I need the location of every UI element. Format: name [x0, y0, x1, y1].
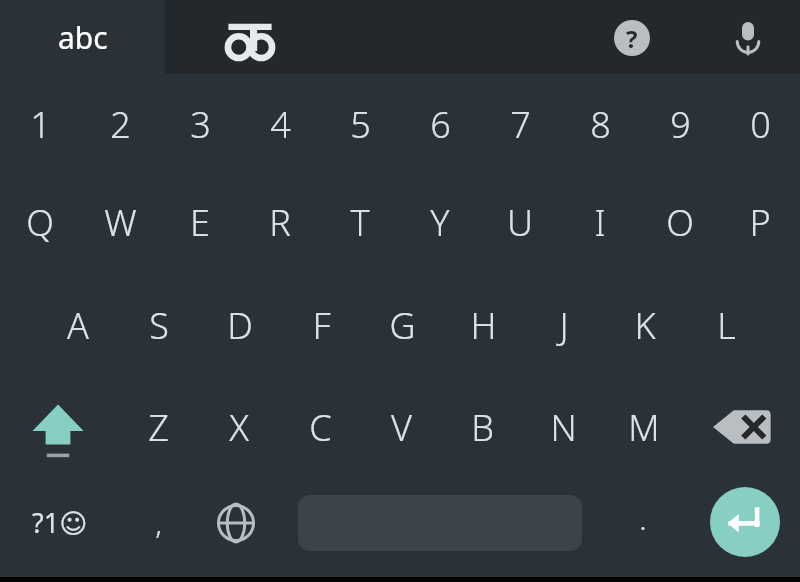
button[interactable]: L	[686, 285, 766, 365]
staticText: U	[507, 198, 533, 247]
button[interactable]: O	[640, 182, 720, 262]
staticText: J	[559, 301, 569, 350]
button[interactable]: .	[608, 486, 678, 551]
button[interactable]: M	[604, 387, 684, 467]
button[interactable]: 8	[560, 84, 640, 164]
staticText: Q	[26, 198, 54, 247]
button[interactable]: Enter	[710, 487, 780, 557]
staticText: O	[666, 198, 694, 247]
button[interactable]: C	[280, 387, 360, 467]
staticText: K	[634, 301, 656, 350]
staticText: P	[749, 198, 771, 247]
button[interactable]: N	[523, 387, 603, 467]
staticText: .	[639, 498, 647, 539]
button[interactable]: H	[443, 285, 523, 365]
staticText: R	[269, 198, 291, 247]
button[interactable]: T	[320, 182, 400, 262]
staticText: ,	[155, 502, 162, 543]
staticText: 9	[670, 100, 691, 149]
button[interactable]: I	[560, 182, 640, 262]
button[interactable]: W	[80, 182, 160, 262]
button[interactable]: G	[362, 285, 442, 365]
staticText: 7	[510, 100, 531, 149]
button[interactable]: S	[119, 285, 199, 365]
button[interactable]: Voice input	[718, 8, 778, 68]
button[interactable]: P	[720, 182, 800, 262]
staticText: ?1☺	[32, 504, 88, 541]
button[interactable]: 7	[480, 84, 560, 164]
button[interactable]: Help	[602, 8, 662, 68]
button[interactable]: 2	[80, 84, 160, 164]
button[interactable]: Y	[400, 182, 480, 262]
button[interactable]: K	[605, 285, 685, 365]
staticText: T	[350, 198, 370, 247]
staticText: abc	[58, 17, 108, 58]
button[interactable]: ?1☺	[10, 490, 110, 555]
button[interactable]: Shift	[18, 387, 98, 467]
staticText: A	[67, 301, 89, 350]
staticText: E	[190, 198, 210, 247]
button[interactable]: Z	[118, 387, 198, 467]
staticText: Y	[430, 198, 450, 247]
staticText: S	[149, 301, 169, 350]
staticText: 1	[30, 100, 51, 149]
staticText: 2	[110, 100, 131, 149]
staticText: B	[471, 403, 494, 452]
button[interactable]: ,	[123, 490, 193, 555]
staticText: 8	[590, 100, 611, 149]
button[interactable]: 9	[640, 84, 720, 164]
staticText: 6	[430, 100, 451, 149]
staticText: H	[470, 301, 497, 350]
staticText: I	[594, 198, 606, 247]
button[interactable]: V	[361, 387, 441, 467]
button[interactable]: Change language	[202, 490, 270, 555]
staticText: N	[550, 403, 577, 452]
button[interactable]: abc	[0, 0, 165, 74]
staticText: ?	[626, 22, 638, 55]
button[interactable]: B	[442, 387, 522, 467]
button[interactable]: U	[480, 182, 560, 262]
staticText: F	[312, 301, 331, 350]
staticText: L	[717, 301, 736, 350]
button[interactable]: Q	[0, 182, 80, 262]
button[interactable]: 4	[240, 84, 320, 164]
staticText: G	[389, 301, 416, 350]
staticText: D	[227, 301, 253, 350]
button[interactable]: 3	[160, 84, 240, 164]
button[interactable]: A	[38, 285, 118, 365]
button[interactable]: D	[200, 285, 280, 365]
button[interactable]: Kannada layout	[205, 2, 295, 72]
button[interactable]: 6	[400, 84, 480, 164]
staticText: X	[229, 403, 249, 452]
button[interactable]: X	[199, 387, 279, 467]
button[interactable]: E	[160, 182, 240, 262]
staticText: 5	[350, 100, 371, 149]
button[interactable]: J	[524, 285, 604, 365]
button[interactable]: 5	[320, 84, 400, 164]
button[interactable]: F	[281, 285, 361, 365]
staticText: 3	[190, 100, 211, 149]
button[interactable]: R	[240, 182, 320, 262]
button[interactable]: Backspace	[705, 392, 785, 462]
staticText: W	[104, 198, 137, 247]
staticText: Z	[148, 403, 169, 452]
staticText: 0	[750, 100, 771, 149]
staticText: 4	[270, 100, 291, 149]
staticText: V	[391, 403, 412, 452]
button[interactable]: 0	[720, 84, 800, 164]
staticText: C	[309, 403, 332, 452]
staticText: M	[628, 403, 660, 452]
button[interactable]: 1	[0, 84, 80, 164]
